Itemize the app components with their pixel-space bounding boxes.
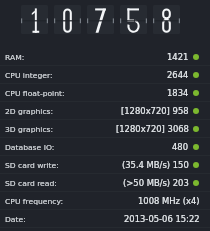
staticText: 1008 MHz (x4) xyxy=(138,196,200,206)
staticText: 3D graphics: xyxy=(5,125,54,134)
staticText: [1280x720] 958 xyxy=(121,106,189,116)
staticText: RAM: xyxy=(5,53,25,62)
button[interactable]: Benchmark score 10758 xyxy=(0,0,210,40)
staticText: CPU integer: xyxy=(5,71,53,80)
button[interactable]: CPU float-point: xyxy=(0,84,210,102)
button[interactable]: SD card read: xyxy=(0,174,210,192)
button[interactable]: Database IO: xyxy=(0,138,210,156)
staticText: 2644 xyxy=(167,70,189,80)
button[interactable]: CPU frequency: xyxy=(0,192,210,210)
button[interactable]: 2D graphics: xyxy=(0,102,210,120)
staticText: Date: xyxy=(5,215,26,224)
staticText: (35.4 MB/s) 150 xyxy=(122,160,189,170)
staticText: [1280x720] 3068 xyxy=(116,124,189,134)
button[interactable]: CPU integer: xyxy=(0,66,210,84)
staticText: 1421 xyxy=(167,52,189,62)
staticText: (>50 MB/s) 203 xyxy=(123,178,189,188)
staticText: 1834 xyxy=(167,88,189,98)
staticText: SD card read: xyxy=(5,179,57,188)
staticText: CPU float-point: xyxy=(5,89,65,98)
staticText: SD card write: xyxy=(5,161,59,170)
button[interactable]: RAM: xyxy=(0,48,210,66)
staticText: Database IO: xyxy=(5,143,55,152)
staticText: 2D graphics: xyxy=(5,107,54,116)
button[interactable]: SD card write: xyxy=(0,156,210,174)
button[interactable]: Date: xyxy=(0,210,210,228)
staticText: 480 xyxy=(172,142,189,152)
staticText: CPU frequency: xyxy=(5,197,63,206)
button[interactable]: 3D graphics: xyxy=(0,120,210,138)
staticText: 2013-05-06 15:22 xyxy=(124,214,200,224)
